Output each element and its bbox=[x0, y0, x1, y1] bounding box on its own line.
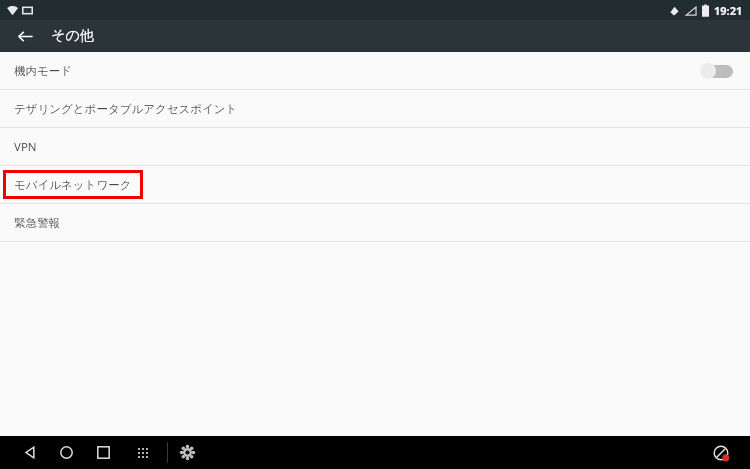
button[interactable]: VPN bbox=[0, 128, 750, 165]
button[interactable]: 通知 bbox=[708, 440, 734, 466]
staticText: 19:21 bbox=[714, 3, 743, 18]
staticText: テザリングとポータブルアクセスポイント bbox=[14, 102, 238, 116]
button[interactable]: ホーム bbox=[53, 436, 79, 469]
staticText: その他 bbox=[51, 27, 94, 45]
button[interactable]: アプリ一覧 bbox=[130, 436, 156, 469]
staticText: 機内モード bbox=[14, 64, 73, 78]
staticText: 緊急警報 bbox=[14, 216, 60, 230]
button[interactable]: 最近のアプリ bbox=[90, 436, 116, 469]
staticText: VPN bbox=[14, 139, 37, 155]
button[interactable]: 戻る bbox=[10, 21, 40, 51]
button[interactable]: テザリングとポータブルアクセスポイント bbox=[0, 90, 750, 127]
staticText: モバイルネットワーク bbox=[14, 178, 132, 192]
button[interactable]: 戻る bbox=[17, 436, 43, 469]
button[interactable]: モバイルネットワーク bbox=[0, 166, 750, 203]
button[interactable]: 緊急警報 bbox=[0, 204, 750, 241]
button[interactable]: 設定 bbox=[174, 436, 200, 469]
button[interactable]: 機内モード bbox=[0, 52, 750, 89]
